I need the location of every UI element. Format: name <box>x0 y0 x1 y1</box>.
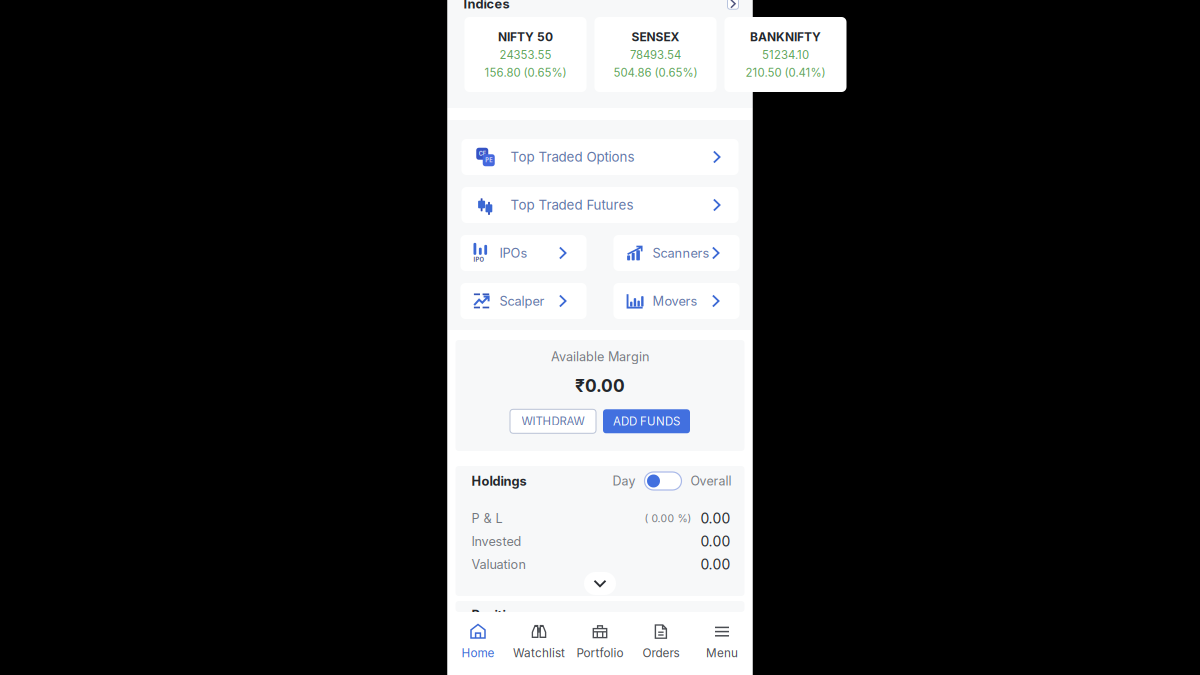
staticText: Scalper <box>499 293 544 309</box>
button[interactable]: Orders <box>630 612 691 675</box>
button[interactable]: NIFTY 50 <box>464 17 586 92</box>
staticText: Top Traded Options <box>510 149 634 165</box>
staticText: Portfolio <box>576 646 623 660</box>
staticText: NIFTY 50 <box>498 29 553 44</box>
button[interactable]: Menu <box>691 612 752 675</box>
staticText: Positions <box>471 607 528 623</box>
staticText: 51234.10 <box>762 48 809 62</box>
staticText: SENSEX <box>631 29 679 44</box>
button[interactable]: WITHDRAW <box>510 409 596 433</box>
staticText: Holdings <box>471 473 526 489</box>
button[interactable]: CE <box>461 139 738 175</box>
button[interactable]: Movers <box>613 283 739 319</box>
staticText: WITHDRAW <box>521 414 584 428</box>
button[interactable]: Watchlist <box>508 612 569 675</box>
button[interactable]: SENSEX <box>594 17 716 92</box>
button[interactable]: See all indices <box>727 0 738 9</box>
staticText: CE <box>479 150 486 157</box>
button[interactable]: IPO <box>460 235 586 271</box>
staticText: 78493.54 <box>630 48 681 62</box>
staticText: ₹0.00 <box>575 375 625 396</box>
staticText: IPOs <box>499 245 527 261</box>
staticText: IPO <box>473 256 484 263</box>
staticText: Home <box>461 646 494 660</box>
staticText: Menu <box>706 646 738 660</box>
staticText: 210.50 (0.41%) <box>745 66 825 79</box>
staticText: Watchlist <box>513 646 565 660</box>
staticText: Indices <box>463 0 509 11</box>
staticText: 24353.55 <box>499 48 551 62</box>
staticText: Available Margin <box>551 349 649 364</box>
staticText: ADD FUNDS <box>613 414 680 428</box>
staticText: BANKNIFTY <box>750 29 821 44</box>
staticText: Day <box>612 473 635 488</box>
button[interactable]: Scalper <box>460 283 586 319</box>
staticText: 156.80 (0.65%) <box>484 66 566 79</box>
staticText: Scanners <box>652 245 709 261</box>
button[interactable]: Top Traded Futures <box>461 187 738 223</box>
button[interactable]: ADD FUNDS <box>603 409 690 433</box>
staticText: Invested <box>471 534 521 549</box>
staticText: 0.00 <box>700 533 730 550</box>
staticText: ( 0.00 %) <box>644 512 691 525</box>
staticText: Movers <box>652 293 697 309</box>
staticText: P & L <box>471 511 502 526</box>
button[interactable]: Scanners <box>613 235 739 271</box>
button[interactable]: Home <box>447 612 508 675</box>
button[interactable]: BANKNIFTY <box>724 17 846 92</box>
staticText: Valuation <box>471 557 525 572</box>
button[interactable]: Portfolio <box>569 612 630 675</box>
staticText: 504.86 (0.65%) <box>613 66 697 79</box>
button[interactable]: Expand holdings <box>584 572 616 595</box>
button[interactable]: Toggle day or overall <box>635 472 690 490</box>
staticText: Top Traded Futures <box>510 197 633 213</box>
staticText: 0.00 <box>700 510 730 527</box>
staticText: 0.00 <box>700 556 730 573</box>
staticText: Overall <box>690 473 731 488</box>
staticText: Orders <box>642 646 679 660</box>
staticText: PE <box>485 157 492 164</box>
